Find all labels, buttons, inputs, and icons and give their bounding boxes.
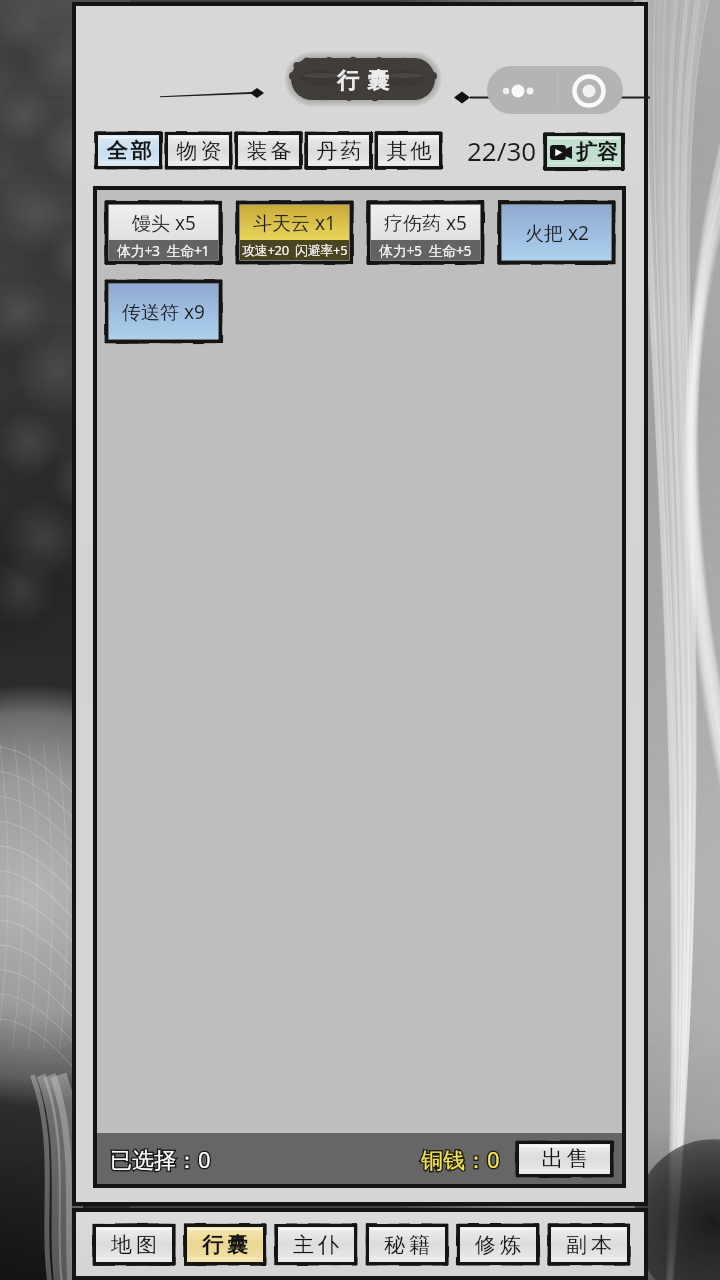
button[interactable]: 全部 — [95, 132, 162, 169]
button[interactable]: 馒头 x5 — [109, 205, 218, 260]
staticText: 其他 — [385, 138, 433, 164]
staticText: 修炼 — [473, 1232, 523, 1258]
button[interactable]: 行囊 — [184, 1224, 266, 1265]
staticText: 行 囊 — [337, 64, 390, 94]
staticText: 副本 — [564, 1232, 614, 1258]
staticText: 地图 — [109, 1232, 159, 1258]
button[interactable]: 疗伤药 x5 — [371, 205, 480, 260]
button[interactable]: 物资 — [165, 132, 232, 169]
staticText: 物资 — [175, 138, 223, 164]
staticText: 全部 — [105, 138, 153, 164]
button[interactable]: 副本 — [548, 1224, 630, 1265]
staticText: 体力+3 生命+1 — [117, 241, 210, 260]
button[interactable]: 火把 x2 — [502, 205, 611, 260]
staticText: 装备 — [245, 138, 293, 164]
button[interactable]: 修炼 — [457, 1224, 539, 1265]
staticText: 馒头 x5 — [132, 210, 196, 236]
staticText: 疗伤药 x5 — [384, 210, 467, 236]
button[interactable]: 传送符 x9 — [109, 284, 218, 339]
button[interactable]: 其他 — [375, 132, 442, 169]
staticText: 铜钱：0 — [421, 1144, 500, 1174]
staticText: 火把 x2 — [525, 220, 589, 246]
button[interactable]: Floating assistant — [487, 66, 623, 114]
staticText: 传送符 x9 — [122, 299, 205, 325]
staticText: 已选择：0 — [110, 1144, 211, 1174]
button[interactable]: 出售 — [516, 1141, 613, 1177]
button[interactable]: 主仆 — [275, 1224, 357, 1265]
button[interactable]: 扩容 — [544, 133, 624, 170]
staticText: 已选择：0 — [110, 1144, 211, 1174]
button[interactable]: 斗天云 x1 — [240, 205, 349, 260]
staticText: 丹药 — [315, 138, 363, 164]
staticText: 铜钱：0 — [421, 1144, 500, 1174]
staticText: 主仆 — [291, 1232, 341, 1258]
staticText: 扩容 — [576, 139, 618, 165]
staticText: 体力+5 生命+5 — [379, 241, 472, 260]
button[interactable]: 丹药 — [305, 132, 372, 169]
staticText: 秘籍 — [382, 1232, 432, 1258]
staticText: 22/30 — [467, 133, 537, 168]
staticText: 行囊 — [200, 1232, 250, 1258]
staticText: 攻速+20 闪避率+5 — [242, 241, 348, 259]
button[interactable]: 秘籍 — [366, 1224, 448, 1265]
staticText: 斗天云 x1 — [253, 210, 336, 236]
staticText: 出售 — [540, 1145, 590, 1173]
button[interactable]: 地图 — [93, 1224, 175, 1265]
button[interactable]: 装备 — [235, 132, 302, 169]
